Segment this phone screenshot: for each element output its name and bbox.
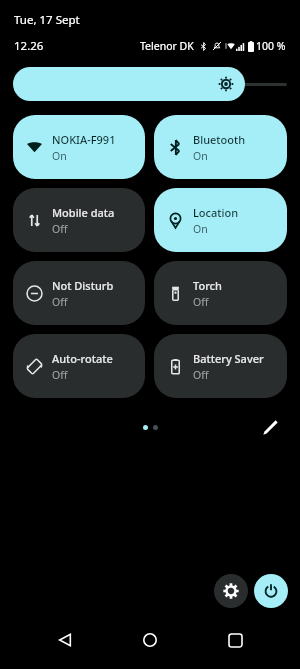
staticText: Tue, 17 Sept (14, 12, 80, 28)
staticText: Telenor DK (140, 39, 194, 53)
staticText: On (193, 149, 208, 163)
staticText: Location (193, 205, 239, 220)
staticText: On (52, 149, 67, 163)
staticText: Off (193, 295, 209, 309)
button[interactable]: Home (130, 623, 170, 657)
staticText: Off (52, 295, 68, 309)
staticText: Torch (193, 278, 222, 293)
button[interactable]: Torch (154, 261, 287, 325)
staticText: Off (52, 368, 68, 382)
button[interactable]: Location (154, 188, 287, 252)
button[interactable]: Battery Saver (154, 334, 287, 398)
button[interactable]: NOKIA-F991 (13, 115, 145, 179)
staticText: NOKIA-F991 (52, 132, 116, 147)
button[interactable]: Bluetooth (154, 115, 287, 179)
staticText: Bluetooth (193, 132, 246, 147)
button[interactable]: Auto-rotate (13, 334, 145, 398)
staticText: Battery Saver (193, 351, 264, 366)
staticText: Mobile data (52, 205, 115, 220)
button[interactable]: Brightness (13, 67, 245, 101)
staticText: On (193, 222, 208, 236)
staticText: Off (193, 368, 209, 382)
button[interactable]: Not Disturb (13, 261, 145, 325)
staticText: 100 % (256, 39, 286, 53)
staticText: Auto-rotate (52, 351, 113, 366)
staticText: Off (52, 222, 68, 236)
button[interactable]: Power (254, 574, 288, 608)
staticText: 12.26 (14, 38, 44, 54)
button[interactable]: Edit tiles (258, 415, 282, 439)
staticText: Not Disturb (52, 278, 114, 293)
button[interactable]: Back (45, 623, 85, 657)
button[interactable]: Settings (214, 574, 248, 608)
button[interactable]: Mobile data (13, 188, 145, 252)
button[interactable]: Recent apps (215, 623, 255, 657)
